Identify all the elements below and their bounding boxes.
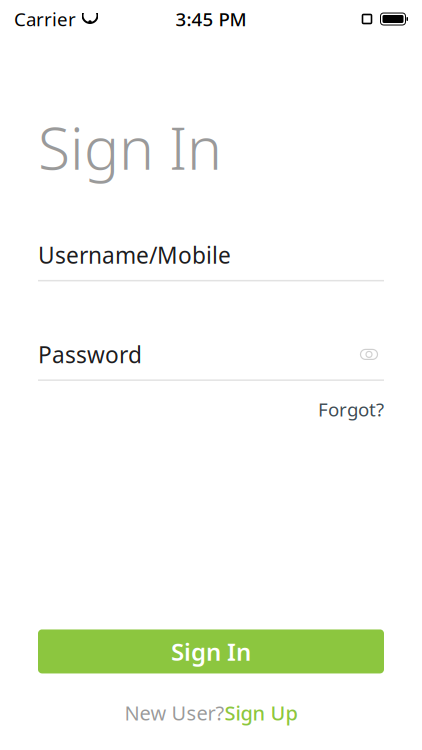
button[interactable]: Sign Up <box>224 695 297 730</box>
button[interactable]: Show password <box>354 341 384 367</box>
button[interactable]: Sign In <box>38 629 384 673</box>
staticText: Sign In <box>38 108 222 186</box>
staticText: Forgot? <box>318 397 384 422</box>
staticText: Sign Up <box>224 699 297 726</box>
staticText: Sign In <box>171 635 251 667</box>
staticText: Password <box>38 339 142 369</box>
staticText: New User? <box>124 699 224 726</box>
staticText: Carrier <box>14 7 76 31</box>
staticText: Username/Mobile <box>38 240 231 270</box>
button[interactable]: Forgot? <box>318 393 384 426</box>
staticText: 3:45 PM <box>175 7 246 31</box>
